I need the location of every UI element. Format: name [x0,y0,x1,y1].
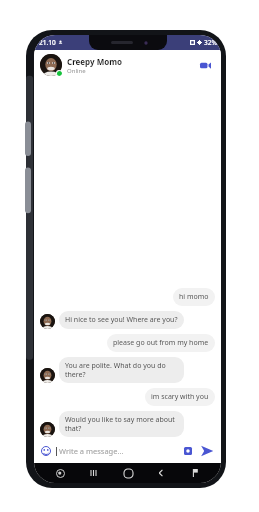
button[interactable]: Write a message... [56,446,181,456]
button[interactable]: Hi nice to see you! Where are you? [40,311,215,329]
staticText: Hi nice to see you! Where are you? [65,315,178,325]
button[interactable]: Keyboard [187,465,203,481]
staticText: Creepy Momo [67,56,122,67]
button[interactable]: Creepy Momo [34,50,221,80]
button[interactable]: You are polite. What do you do there? [40,357,215,383]
button[interactable]: Would you like to say more about that? [40,411,215,437]
staticText: Write a message... [59,446,124,456]
staticText: im scary with you [151,392,209,402]
staticText: You are polite. What do you do there? [65,361,178,379]
button[interactable]: Video call [195,55,215,75]
button[interactable]: hi momo [40,288,215,306]
button[interactable]: im scary with you [40,388,215,406]
button[interactable]: Emoji [39,444,53,458]
button[interactable]: Recent apps [86,465,102,481]
button[interactable]: Back [153,465,169,481]
staticText: Would you like to say more about that? [65,415,178,433]
button[interactable]: Camera [181,444,195,458]
button[interactable]: Send [198,442,216,460]
button[interactable]: Home [120,465,136,481]
staticText: 32% [204,38,217,47]
staticText: please go out from my home [113,338,209,348]
staticText: 21.10 [39,38,56,47]
staticText: hi momo [179,292,209,302]
button[interactable]: Assistant [52,465,68,481]
button[interactable]: please go out from my home [40,334,215,352]
staticText: Online [67,67,86,75]
